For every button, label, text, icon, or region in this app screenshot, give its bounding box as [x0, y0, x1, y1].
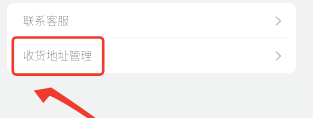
- staticText: 收货地址管理: [23, 47, 92, 64]
- other: Open: [274, 51, 284, 61]
- button[interactable]: 收货地址管理: [7, 38, 296, 72]
- button[interactable]: 联系客服: [7, 3, 296, 37]
- staticText: 联系客服: [23, 12, 69, 29]
- other: Open: [274, 16, 284, 26]
